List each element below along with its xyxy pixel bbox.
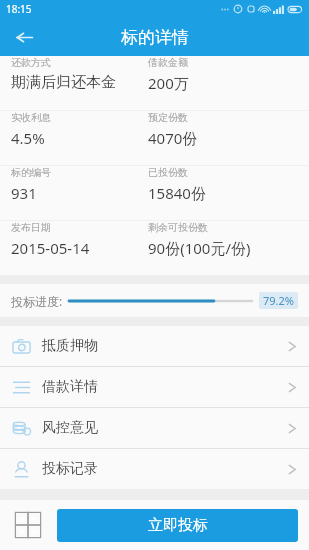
staticText: 风控意见 bbox=[42, 419, 98, 437]
staticText: 剩余可投份数 bbox=[148, 221, 208, 234]
staticText: 4.5% bbox=[11, 128, 45, 148]
button[interactable]: 风控意见 bbox=[0, 408, 309, 448]
staticText: 投标进度: bbox=[11, 293, 63, 309]
staticText: 15840份 bbox=[148, 183, 206, 203]
staticText: 已投份数 bbox=[148, 166, 188, 179]
staticText: 立即投标 bbox=[148, 516, 208, 535]
staticText: 931 bbox=[11, 183, 37, 203]
staticText: 90份(100元/份) bbox=[148, 238, 251, 258]
staticText: 借款详情 bbox=[42, 378, 98, 396]
button[interactable]: 抵质押物 bbox=[0, 326, 309, 366]
staticText: 抵质押物 bbox=[42, 337, 98, 355]
staticText: 还款方式 bbox=[11, 56, 51, 69]
staticText: 79.2% bbox=[263, 293, 294, 308]
staticText: 投标记录 bbox=[42, 460, 98, 478]
staticText: 2015-05-14 bbox=[11, 238, 90, 258]
button[interactable]: 借款详情 bbox=[0, 367, 309, 407]
staticText: 标的详情 bbox=[121, 27, 189, 48]
staticText: 18:15 bbox=[6, 2, 32, 16]
button[interactable]: Calculator bbox=[11, 508, 45, 542]
staticText: 发布日期 bbox=[11, 221, 51, 234]
staticText: 实收利息 bbox=[11, 111, 51, 124]
staticText: 借款金额 bbox=[148, 56, 188, 69]
staticText: 预定份数 bbox=[148, 111, 188, 124]
staticText: 期满后归还本金 bbox=[11, 73, 116, 92]
staticText: 标的编号 bbox=[11, 166, 51, 179]
button[interactable]: Back bbox=[0, 18, 48, 56]
button[interactable]: 立即投标 bbox=[57, 509, 298, 542]
staticText: 200万 bbox=[148, 73, 189, 93]
staticText: 4070份 bbox=[148, 128, 198, 148]
button[interactable]: 投标记录 bbox=[0, 449, 309, 489]
